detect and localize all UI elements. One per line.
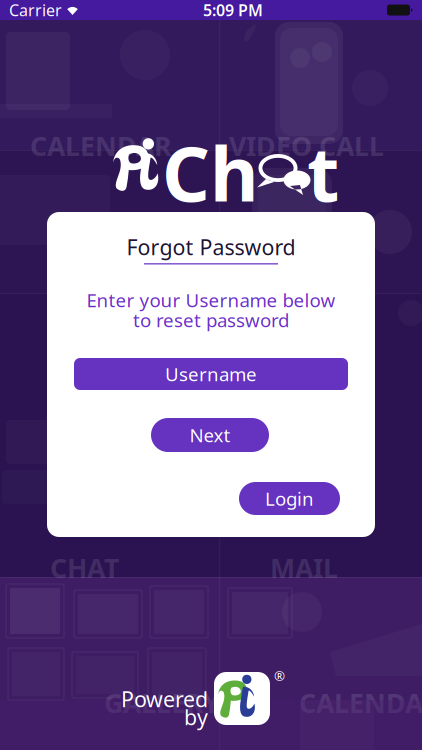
staticText: CALENDAR	[299, 685, 422, 720]
staticText: Powered	[121, 685, 208, 713]
staticText: Login	[265, 486, 314, 511]
staticText: CALENDAR	[30, 128, 171, 163]
staticText: Username	[165, 362, 257, 386]
staticText: Enter your Username below	[86, 288, 335, 312]
staticText: Carrier	[9, 0, 62, 21]
staticText: Ch	[162, 123, 259, 222]
staticText: by	[184, 703, 208, 731]
staticText: CHAT	[50, 550, 119, 585]
staticText: 5:09 PM	[203, 0, 263, 21]
staticText: to reset password	[133, 308, 289, 332]
staticText: VIDEO CALL	[229, 128, 384, 163]
button[interactable]: Login	[239, 482, 340, 515]
staticText: Next	[189, 423, 230, 447]
staticText: MAIL	[270, 550, 338, 585]
staticText: Forgot Password	[126, 233, 295, 261]
staticText: GALLERY	[104, 685, 220, 720]
staticText: ®	[274, 667, 285, 685]
button[interactable]: Next	[151, 418, 269, 452]
button[interactable]: Username	[74, 358, 348, 390]
staticText: t	[307, 123, 339, 222]
